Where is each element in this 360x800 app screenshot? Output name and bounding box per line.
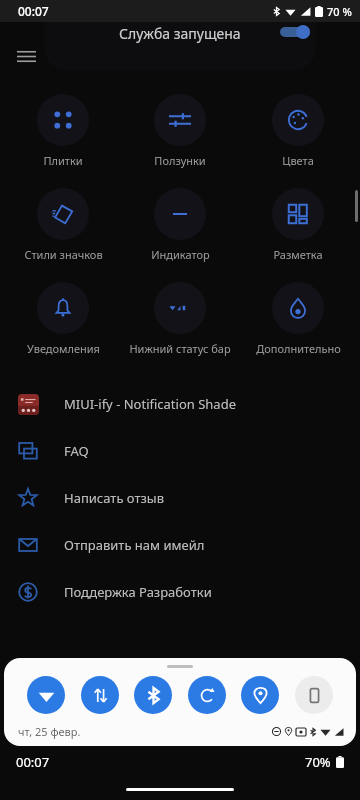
button[interactable]: FAQ <box>0 427 360 474</box>
button[interactable]: Поддержка Разработки <box>0 568 360 615</box>
button[interactable]: Mobile data <box>81 676 119 714</box>
button[interactable]: Нижний статус бар <box>125 276 235 362</box>
button[interactable]: Уведомления <box>8 276 118 362</box>
button[interactable]: Дополнительно <box>243 276 353 362</box>
staticText: Дополнительно <box>256 341 341 356</box>
staticText: Цвета <box>282 153 314 168</box>
staticText: 70 % <box>327 4 352 19</box>
staticText: 00:07 <box>18 3 49 19</box>
button[interactable]: Location <box>241 676 279 714</box>
staticText: Нижний статус бар <box>129 341 231 356</box>
staticText: 70% <box>305 753 331 771</box>
button[interactable]: Device <box>295 676 333 714</box>
staticText: Ползунки <box>154 153 206 168</box>
button[interactable]: Служба запущена <box>44 22 316 70</box>
staticText: Уведомления <box>27 341 100 356</box>
staticText: Стили значков <box>24 247 103 262</box>
button[interactable]: Разметка <box>243 182 353 268</box>
button[interactable]: Bluetooth <box>134 676 172 714</box>
staticText: Отправить нам имейл <box>64 536 205 554</box>
button[interactable]: Цвета <box>243 88 353 174</box>
staticText: Поддержка Разработки <box>64 583 212 601</box>
button[interactable]: Ползунки <box>125 88 235 174</box>
button[interactable]: Стили значков <box>8 182 118 268</box>
button[interactable]: Отправить нам имейл <box>0 521 360 568</box>
button[interactable]: Menu <box>8 38 44 74</box>
staticText: 00:07 <box>16 753 50 771</box>
staticText: Индикатор <box>151 247 210 262</box>
button[interactable]: Индикатор <box>125 182 235 268</box>
button[interactable]: Auto rotate <box>188 676 226 714</box>
staticText: чт, 25 февр. <box>18 724 81 739</box>
staticText: FAQ <box>64 442 89 460</box>
button[interactable]: Wi-Fi <box>27 676 65 714</box>
staticText: Служба запущена <box>119 24 241 43</box>
button[interactable]: Написать отзыв <box>0 474 360 521</box>
staticText: Разметка <box>273 247 323 262</box>
button[interactable]: Плитки <box>8 88 118 174</box>
staticText: MIUI-ify - Notification Shade <box>64 395 236 413</box>
button[interactable]: MIUI-ify - Notification Shade <box>0 380 360 427</box>
staticText: Написать отзыв <box>64 489 165 507</box>
staticText: Плитки <box>43 153 83 168</box>
